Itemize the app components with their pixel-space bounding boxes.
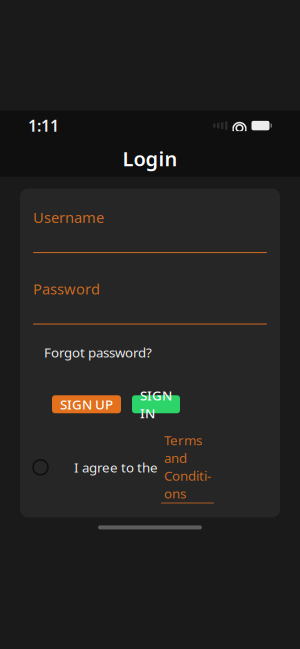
button[interactable]: SIGN IN [132,395,180,413]
staticText: Password [33,279,100,299]
button[interactable]: Terms and Conditions [161,431,214,503]
staticText: SIGN IN [140,387,172,422]
button[interactable]: Forgot password? [33,325,152,365]
staticText: Username [33,208,104,227]
staticText: Terms and Conditions [164,431,211,502]
staticText: I agree to the [74,458,161,476]
staticText: Login [122,145,177,172]
button[interactable]: SIGN UP [52,395,121,413]
button[interactable]: Agree to terms checkbox [33,460,48,475]
staticText: SIGN UP [60,395,113,413]
staticText: Forgot password? [44,344,152,361]
staticText: 1:11 [28,115,59,136]
